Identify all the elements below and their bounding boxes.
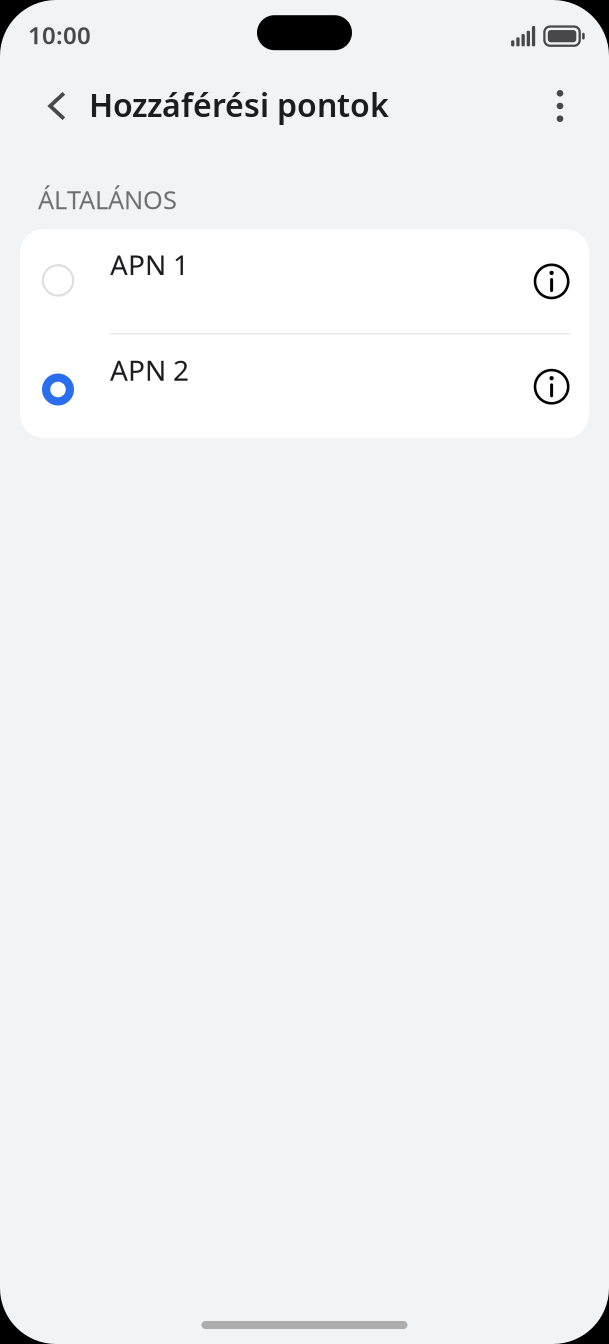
staticText: 10:00: [28, 19, 91, 51]
staticText: APN 1: [110, 246, 189, 283]
staticText: APN 2: [110, 351, 189, 388]
staticText: ÁLTALÁNOS: [38, 183, 177, 216]
button[interactable]: More options: [535, 72, 585, 140]
button[interactable]: APN 1 info: [514, 229, 589, 333]
button[interactable]: Select APN 1: [20, 229, 110, 333]
staticText: Hozzáférési pontok: [89, 83, 389, 126]
button[interactable]: APN 2 info: [514, 334, 589, 438]
button[interactable]: Select APN 2: [20, 334, 110, 438]
button[interactable]: Back: [32, 72, 82, 140]
